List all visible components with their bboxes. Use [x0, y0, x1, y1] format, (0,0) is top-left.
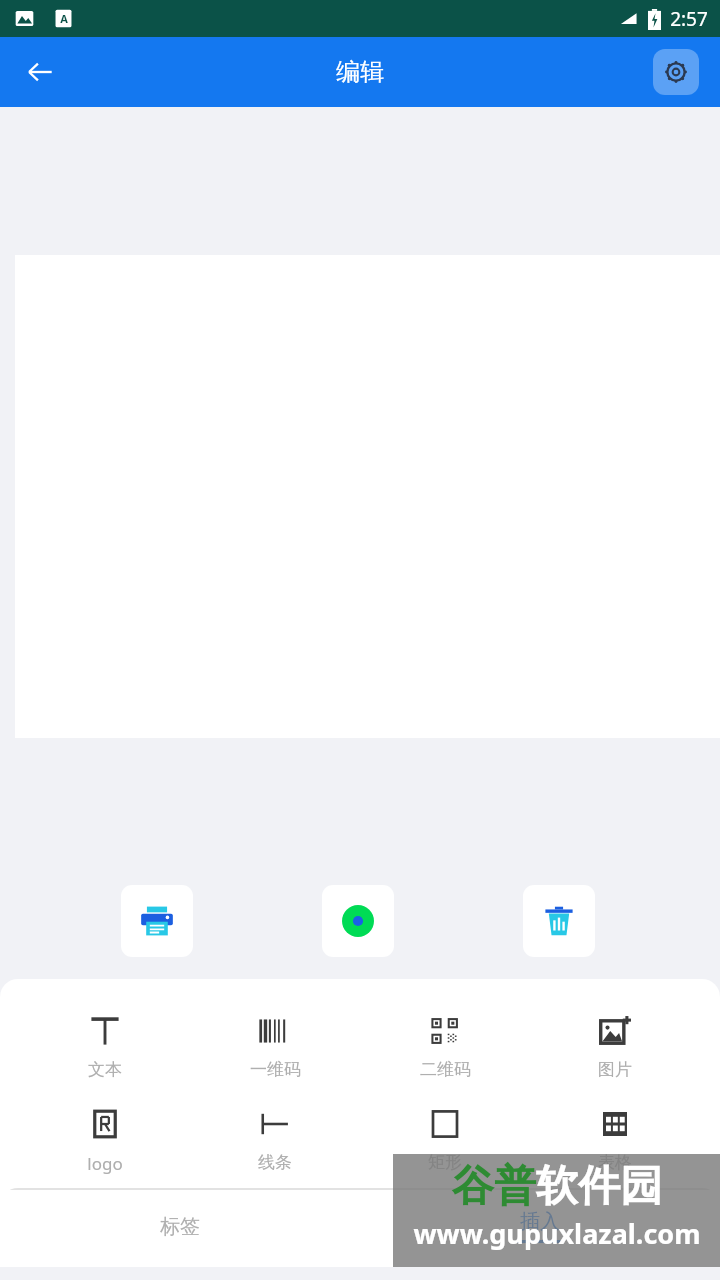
button[interactable]: logo	[40, 1104, 170, 1175]
staticText: www.gupuxlazal.com	[413, 1215, 701, 1252]
button[interactable]: 标签	[0, 1188, 360, 1264]
staticText: 图片	[598, 1059, 632, 1080]
staticText: 软件园	[536, 1160, 662, 1213]
button[interactable]: Settings	[653, 49, 699, 95]
button[interactable]: 文本	[40, 1011, 170, 1080]
button[interactable]: Back	[16, 48, 64, 96]
staticText: 插入	[520, 1209, 560, 1234]
staticText: 2:57	[670, 6, 708, 32]
staticText: 谷普	[452, 1160, 536, 1213]
button[interactable]: Record	[322, 885, 394, 957]
staticText: 编辑	[336, 57, 384, 87]
staticText: 矩形	[428, 1152, 462, 1173]
button[interactable]: 图片	[550, 1011, 680, 1080]
button[interactable]: 一维码	[210, 1011, 340, 1080]
staticText: 文本	[88, 1059, 122, 1080]
button[interactable]: 插入	[360, 1188, 720, 1264]
button[interactable]: 线条	[210, 1104, 340, 1173]
staticText: 表格	[598, 1152, 632, 1173]
button[interactable]: 矩形	[380, 1104, 510, 1173]
staticText: 一维码	[250, 1059, 301, 1080]
button[interactable]: 表格	[550, 1104, 680, 1173]
button[interactable]: Print	[121, 885, 193, 957]
staticText: 标签	[160, 1214, 200, 1239]
staticText: A	[60, 11, 68, 26]
staticText: 二维码	[420, 1059, 471, 1080]
button[interactable]: 二维码	[380, 1011, 510, 1080]
staticText: 线条	[258, 1152, 292, 1173]
staticText: logo	[87, 1152, 123, 1175]
button[interactable]: Delete	[523, 885, 595, 957]
